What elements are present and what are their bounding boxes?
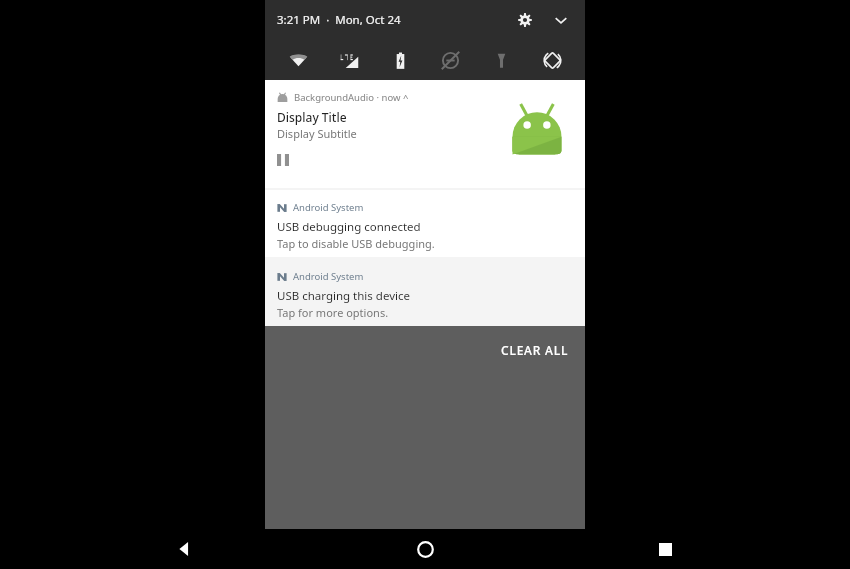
button[interactable]: Mobile data LTE <box>334 45 364 75</box>
staticText: BackgroundAudio · now ^ <box>294 91 409 104</box>
staticText: Android System <box>293 270 364 283</box>
button[interactable]: Home <box>403 529 447 569</box>
staticText: Tap for more options. <box>277 305 389 320</box>
button[interactable]: Android System <box>265 190 585 257</box>
staticText: 3:21 PM · Mon, Oct 24 <box>277 12 401 28</box>
button[interactable]: Recent apps <box>645 529 685 569</box>
staticText: Display Title <box>277 109 347 125</box>
button[interactable]: Settings <box>511 6 539 34</box>
staticText: USB debugging connected <box>277 219 421 235</box>
button[interactable]: Pause <box>277 149 299 171</box>
staticText: Display Subtitle <box>277 126 357 141</box>
button[interactable]: Auto rotate <box>537 45 567 75</box>
staticText: Android System <box>293 201 364 214</box>
button[interactable]: Back <box>165 529 205 569</box>
staticText: USB charging this device <box>277 288 410 304</box>
button[interactable]: CLEAR ALL <box>491 334 579 366</box>
staticText: Tap to disable USB debugging. <box>277 236 435 251</box>
button[interactable]: Battery <box>385 45 415 75</box>
button[interactable]: Wi-Fi <box>283 45 313 75</box>
button[interactable]: Flashlight <box>486 45 516 75</box>
button[interactable]: Android System <box>265 259 585 326</box>
staticText: CLEAR ALL <box>501 342 569 358</box>
button[interactable]: BackgroundAudio · now ^ <box>265 80 585 188</box>
button[interactable]: Do not disturb <box>435 45 465 75</box>
button[interactable]: Collapse <box>547 6 575 34</box>
